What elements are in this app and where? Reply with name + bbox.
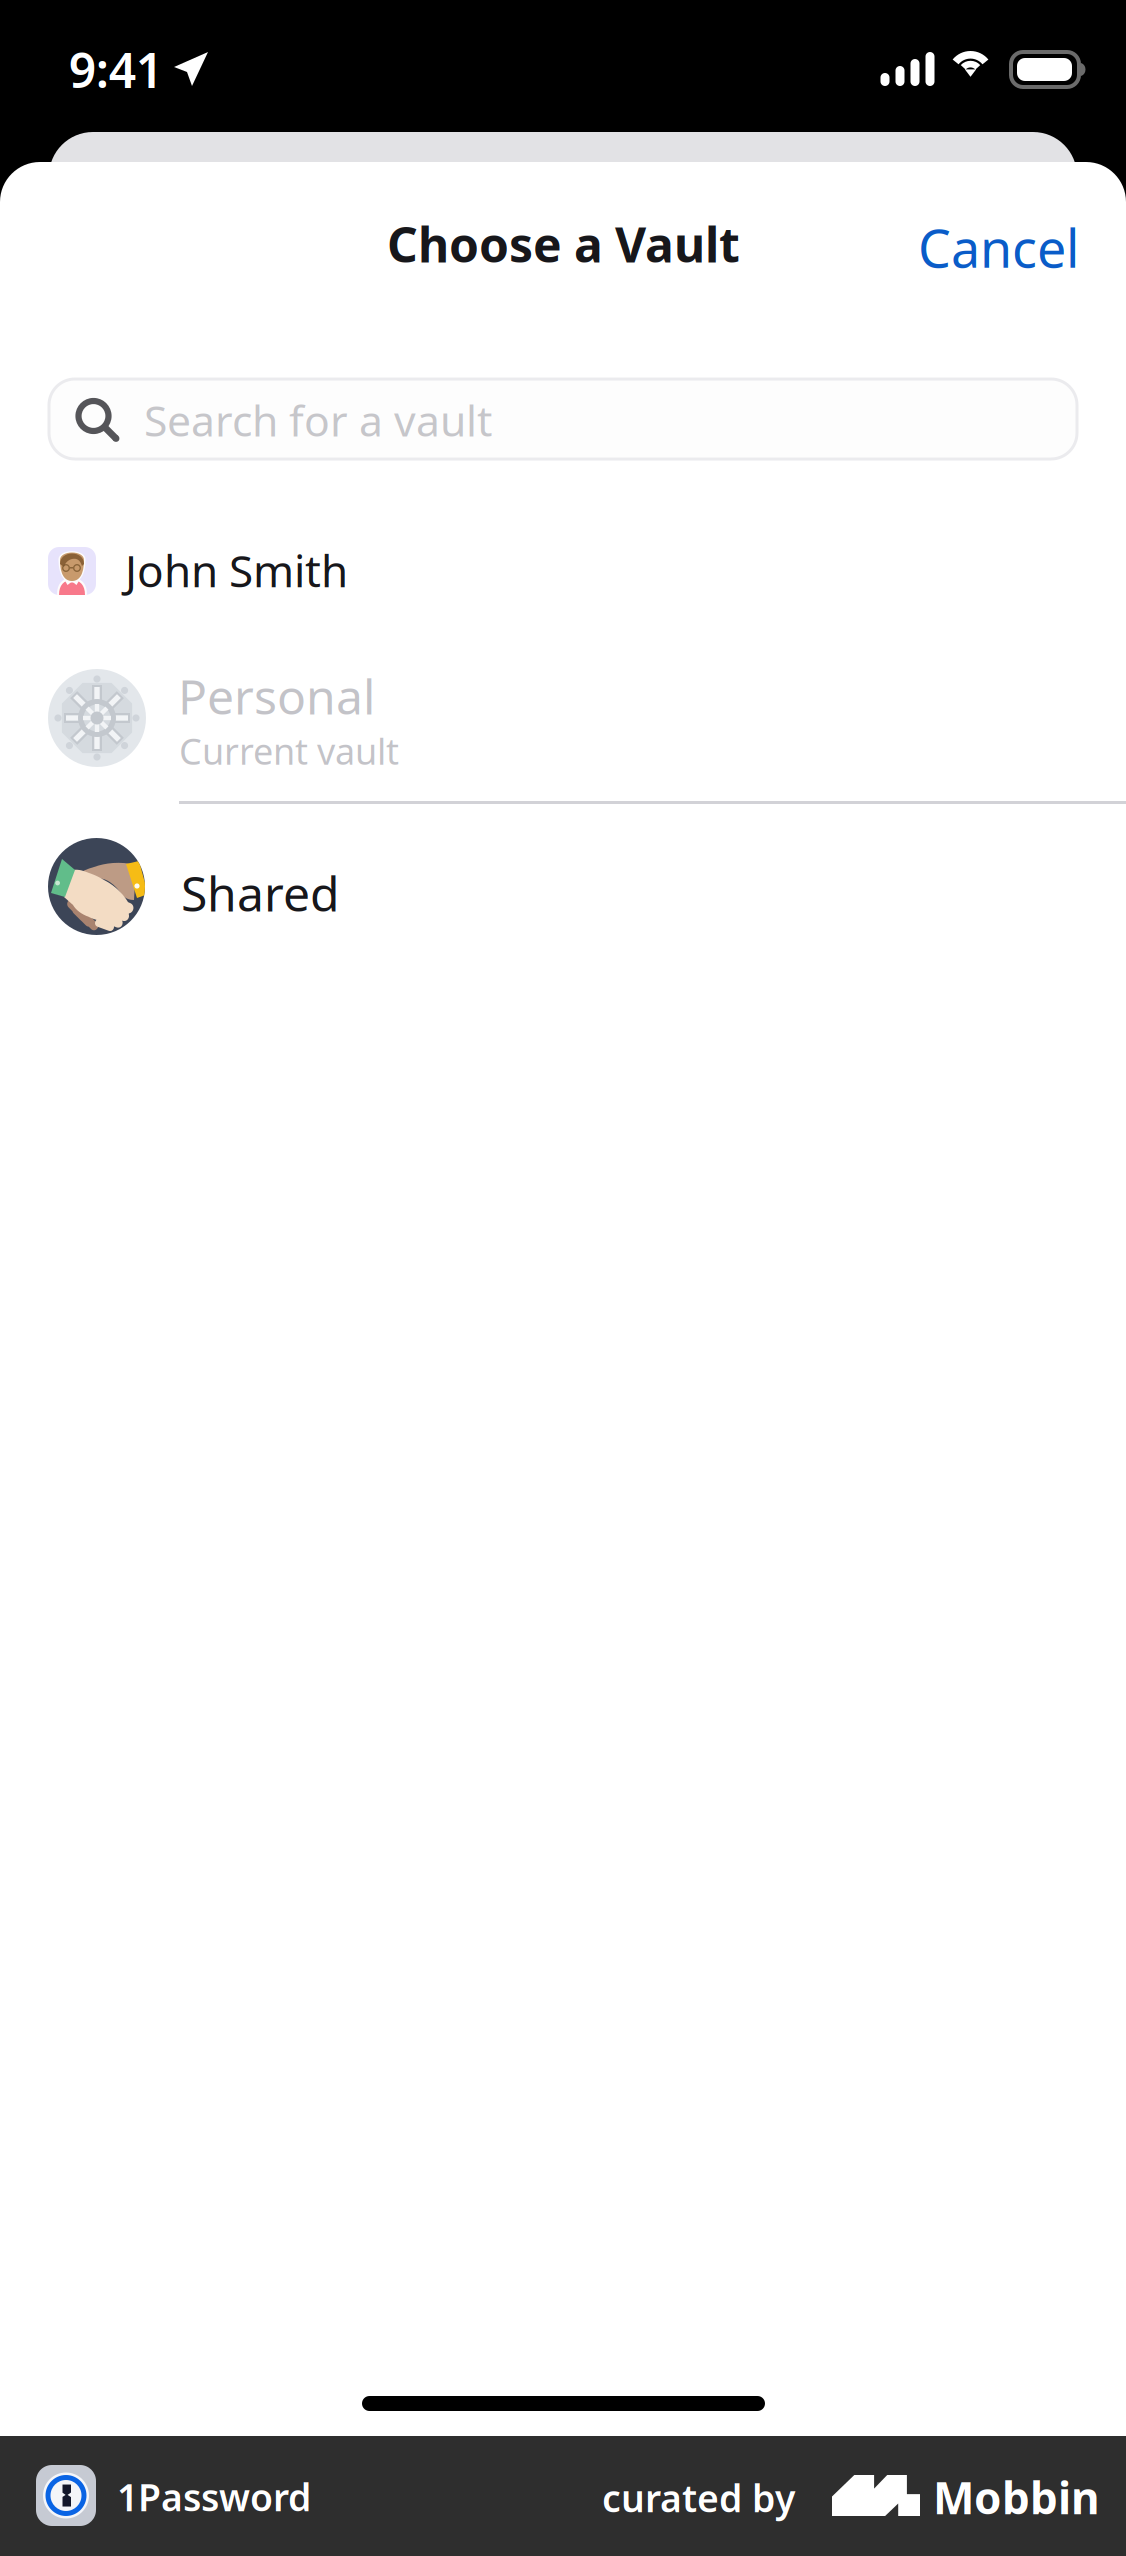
staticText: Choose a Vault [387,212,740,276]
button[interactable]: Personal [0,648,1126,804]
staticText: John Smith [125,541,348,599]
staticText: Cancel [918,213,1079,282]
staticText: 9:41 [69,38,163,101]
staticText: Shared [181,861,340,925]
staticText: Current vault [179,727,399,775]
button[interactable]: Shared [0,818,1126,952]
staticText: Search for a vault [144,392,492,448]
staticText: Mobbin [933,2468,1100,2526]
button[interactable]: John Smith [0,518,1126,624]
staticText: 1Password [117,2472,311,2522]
staticText: Personal [178,664,375,728]
button[interactable]: Search for a vault [49,379,1077,459]
staticText: curated by [602,2473,795,2523]
button[interactable]: Cancel [857,186,1077,290]
